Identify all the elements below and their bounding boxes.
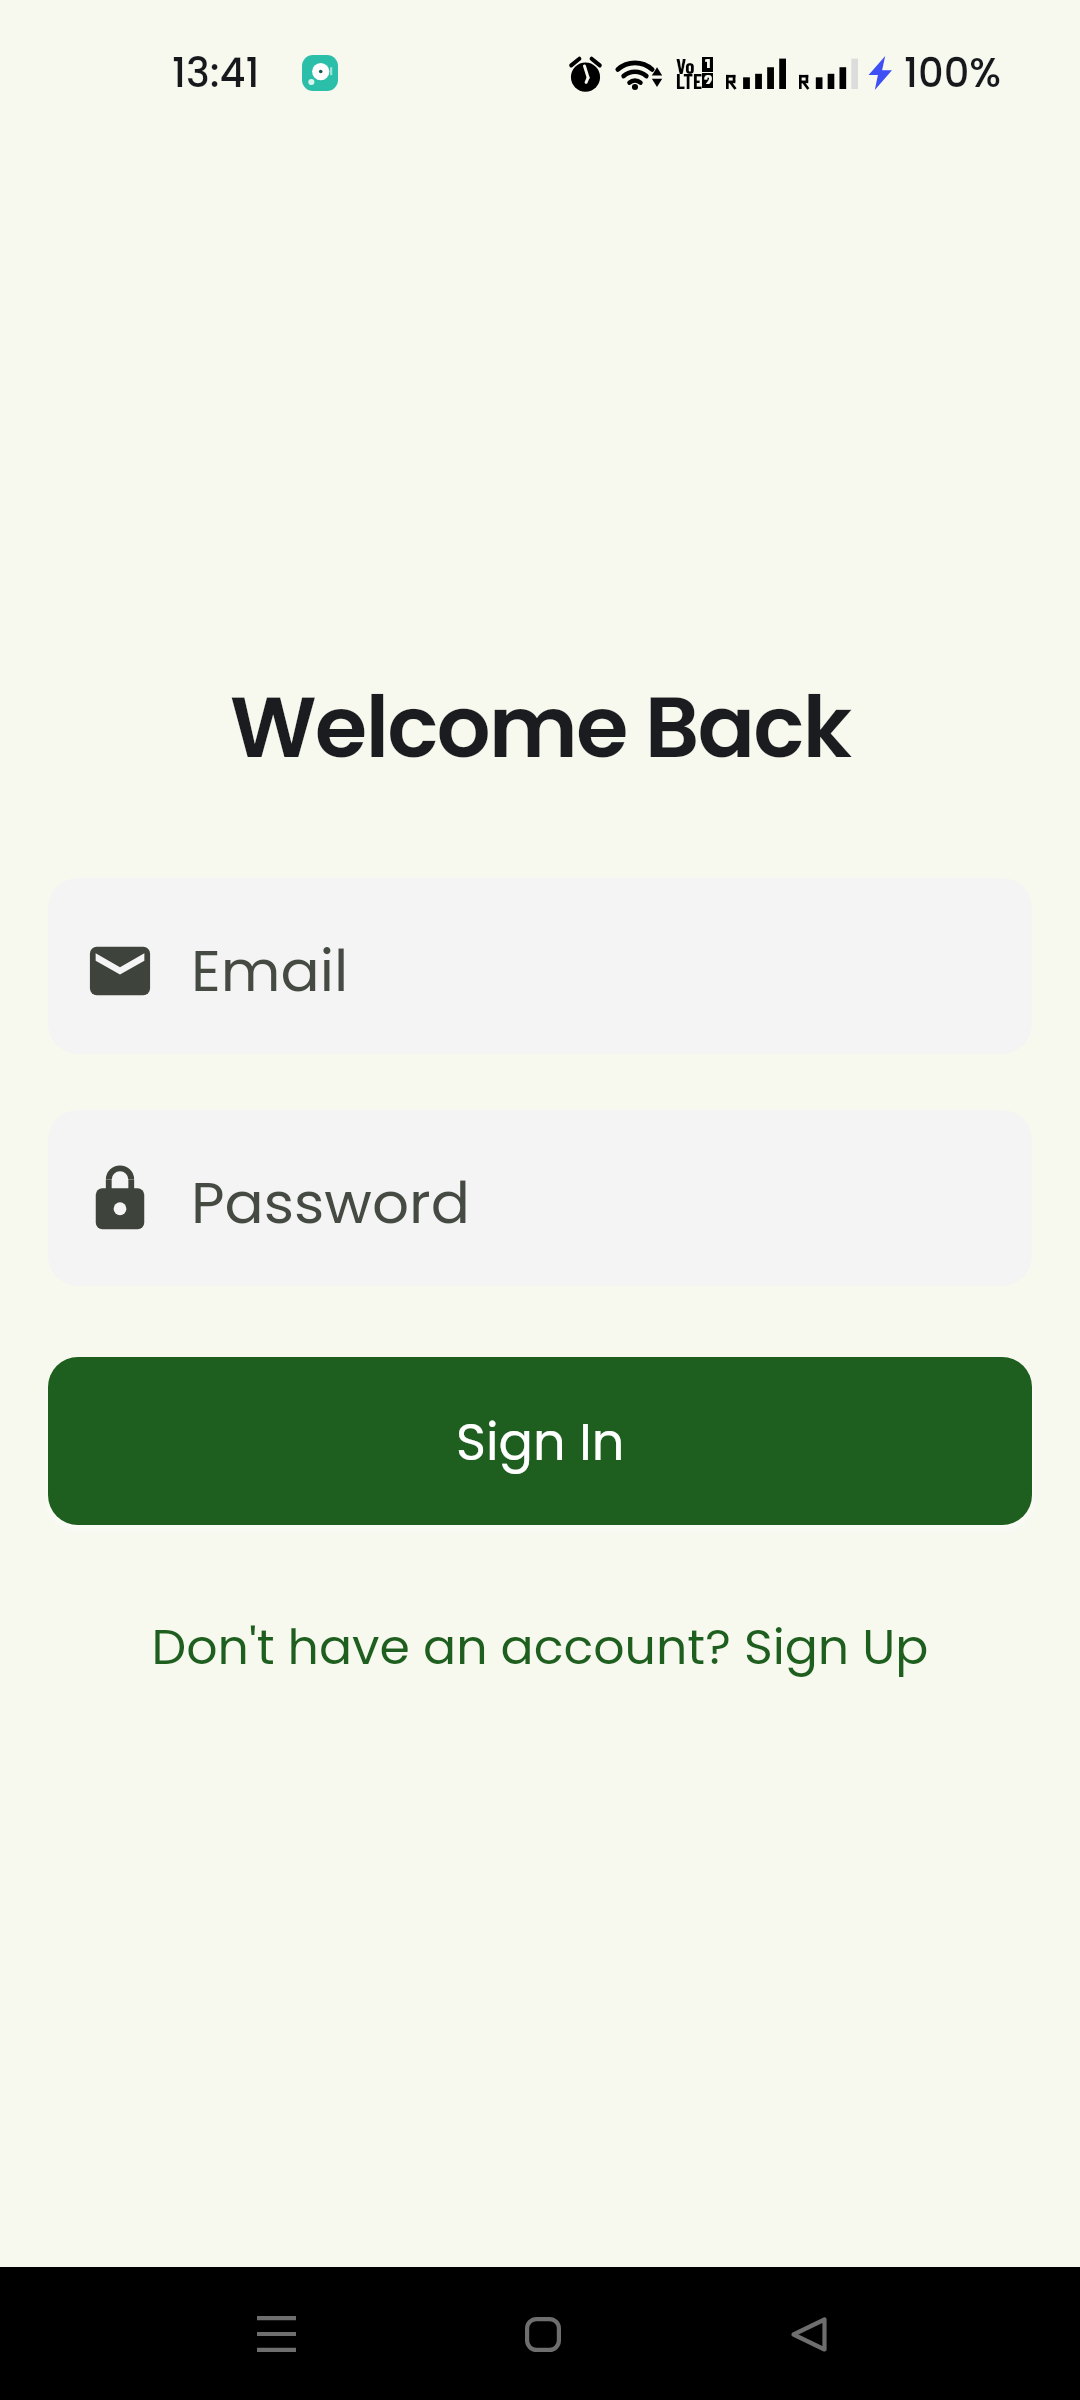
button[interactable]: Sign In xyxy=(48,1357,1032,1525)
button[interactable]: Back xyxy=(749,2274,869,2394)
button[interactable]: Password xyxy=(48,1110,1032,1286)
staticText: 13:41 xyxy=(172,45,260,101)
staticText: Email xyxy=(191,930,349,1011)
button[interactable]: Recent apps xyxy=(216,2274,336,2394)
staticText: 100% xyxy=(904,45,1002,101)
staticText: 1 xyxy=(705,53,711,68)
staticText: Welcome Back xyxy=(0,668,1080,787)
staticText: LTE xyxy=(676,68,703,93)
button[interactable]: Email xyxy=(48,878,1032,1054)
button[interactable]: Home xyxy=(483,2274,603,2394)
staticText: 2 xyxy=(704,69,713,84)
staticText: Sign In xyxy=(456,1406,625,1477)
button[interactable]: Don't have an account? Sign Up xyxy=(0,1613,1080,1682)
staticText: Vo xyxy=(676,53,695,78)
staticText: Password xyxy=(191,1162,470,1243)
